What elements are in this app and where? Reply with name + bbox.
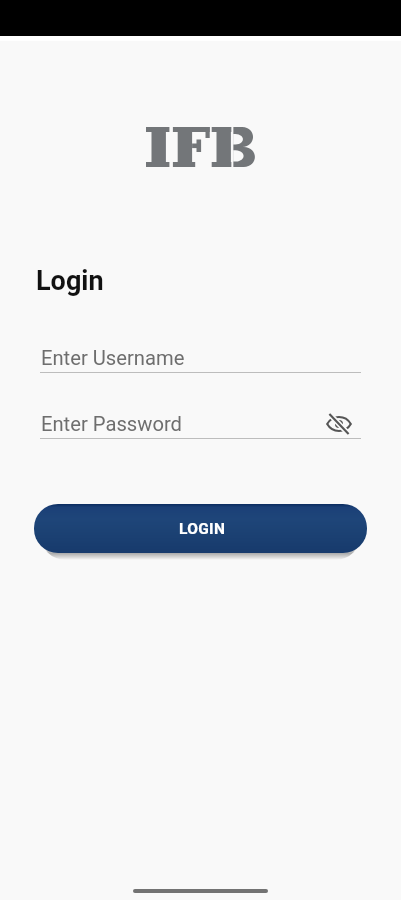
button[interactable]: Show password: [326, 411, 352, 437]
staticText: LOGIN: [179, 520, 226, 538]
staticText: Login: [36, 265, 104, 297]
button[interactable]: LOGIN: [34, 504, 367, 553]
staticText: Enter Username: [41, 346, 361, 370]
staticText: Enter Password: [41, 412, 326, 436]
